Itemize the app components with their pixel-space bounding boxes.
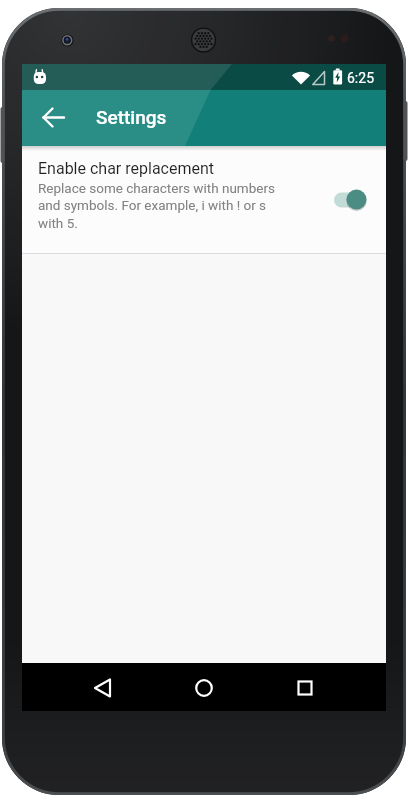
button[interactable]: [22, 146, 386, 253]
staticText: Replace some characters with numbers and…: [38, 180, 275, 232]
staticText: Enable char replacement: [38, 159, 215, 178]
button[interactable]: [270, 663, 350, 711]
button[interactable]: [328, 186, 368, 214]
staticText: Settings: [96, 106, 167, 128]
button[interactable]: [80, 663, 170, 711]
button[interactable]: [170, 663, 238, 711]
staticText: 6:25: [347, 70, 374, 86]
button[interactable]: [40, 104, 68, 132]
